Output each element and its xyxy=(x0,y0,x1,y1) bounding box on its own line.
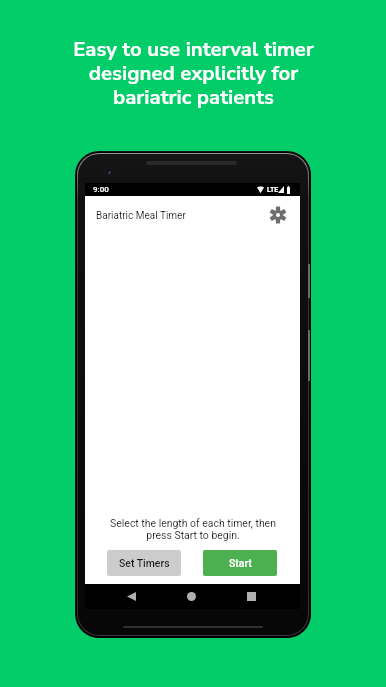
staticText: Bariatric Meal Timer xyxy=(96,210,186,222)
button[interactable]: Home xyxy=(179,584,203,608)
staticText: Select the length of each timer, then pr… xyxy=(110,517,276,541)
button[interactable]: Start xyxy=(203,550,277,576)
staticText: Start xyxy=(229,557,252,569)
button[interactable]: Settings xyxy=(267,204,289,226)
staticText: LTE xyxy=(267,186,279,194)
staticText: 9:00 xyxy=(93,185,109,194)
button[interactable]: Back xyxy=(119,584,143,608)
staticText: Easy to use interval timer designed expl… xyxy=(73,35,314,111)
staticText: Set Timers xyxy=(119,557,170,569)
button[interactable]: Recents xyxy=(239,584,263,608)
button[interactable]: Set Timers xyxy=(107,550,181,576)
